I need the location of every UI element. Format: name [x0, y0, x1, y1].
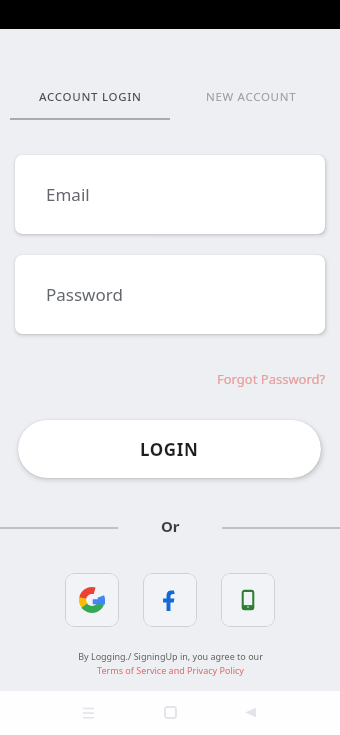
staticText: ACCOUNT LOGIN — [39, 89, 142, 105]
button[interactable]: Sign in with Phone — [221, 573, 275, 627]
staticText: Forgot Password? — [217, 370, 326, 388]
staticText: LOGIN — [140, 438, 199, 461]
button[interactable]: Back — [233, 695, 267, 729]
staticText: NEW ACCOUNT — [206, 89, 297, 105]
staticText: Email — [46, 183, 90, 206]
button[interactable]: Recent apps — [71, 695, 105, 729]
button[interactable]: NEW ACCOUNT — [180, 84, 322, 110]
button[interactable]: Email — [15, 155, 325, 234]
button[interactable]: Terms of Service and Privacy Policy — [97, 664, 244, 676]
staticText: Or — [161, 516, 180, 536]
button[interactable]: Forgot Password? — [217, 370, 326, 388]
staticText: By Logging./ SigningUp in, you agree to … — [78, 650, 263, 662]
button[interactable]: LOGIN — [18, 420, 321, 478]
button[interactable]: Sign in with Facebook — [143, 573, 197, 627]
staticText: Password — [46, 283, 123, 306]
button[interactable]: Sign in with Google — [65, 573, 119, 627]
button[interactable]: ACCOUNT LOGIN — [0, 84, 180, 110]
button[interactable]: Password — [15, 255, 325, 334]
button[interactable]: Home — [153, 695, 187, 729]
